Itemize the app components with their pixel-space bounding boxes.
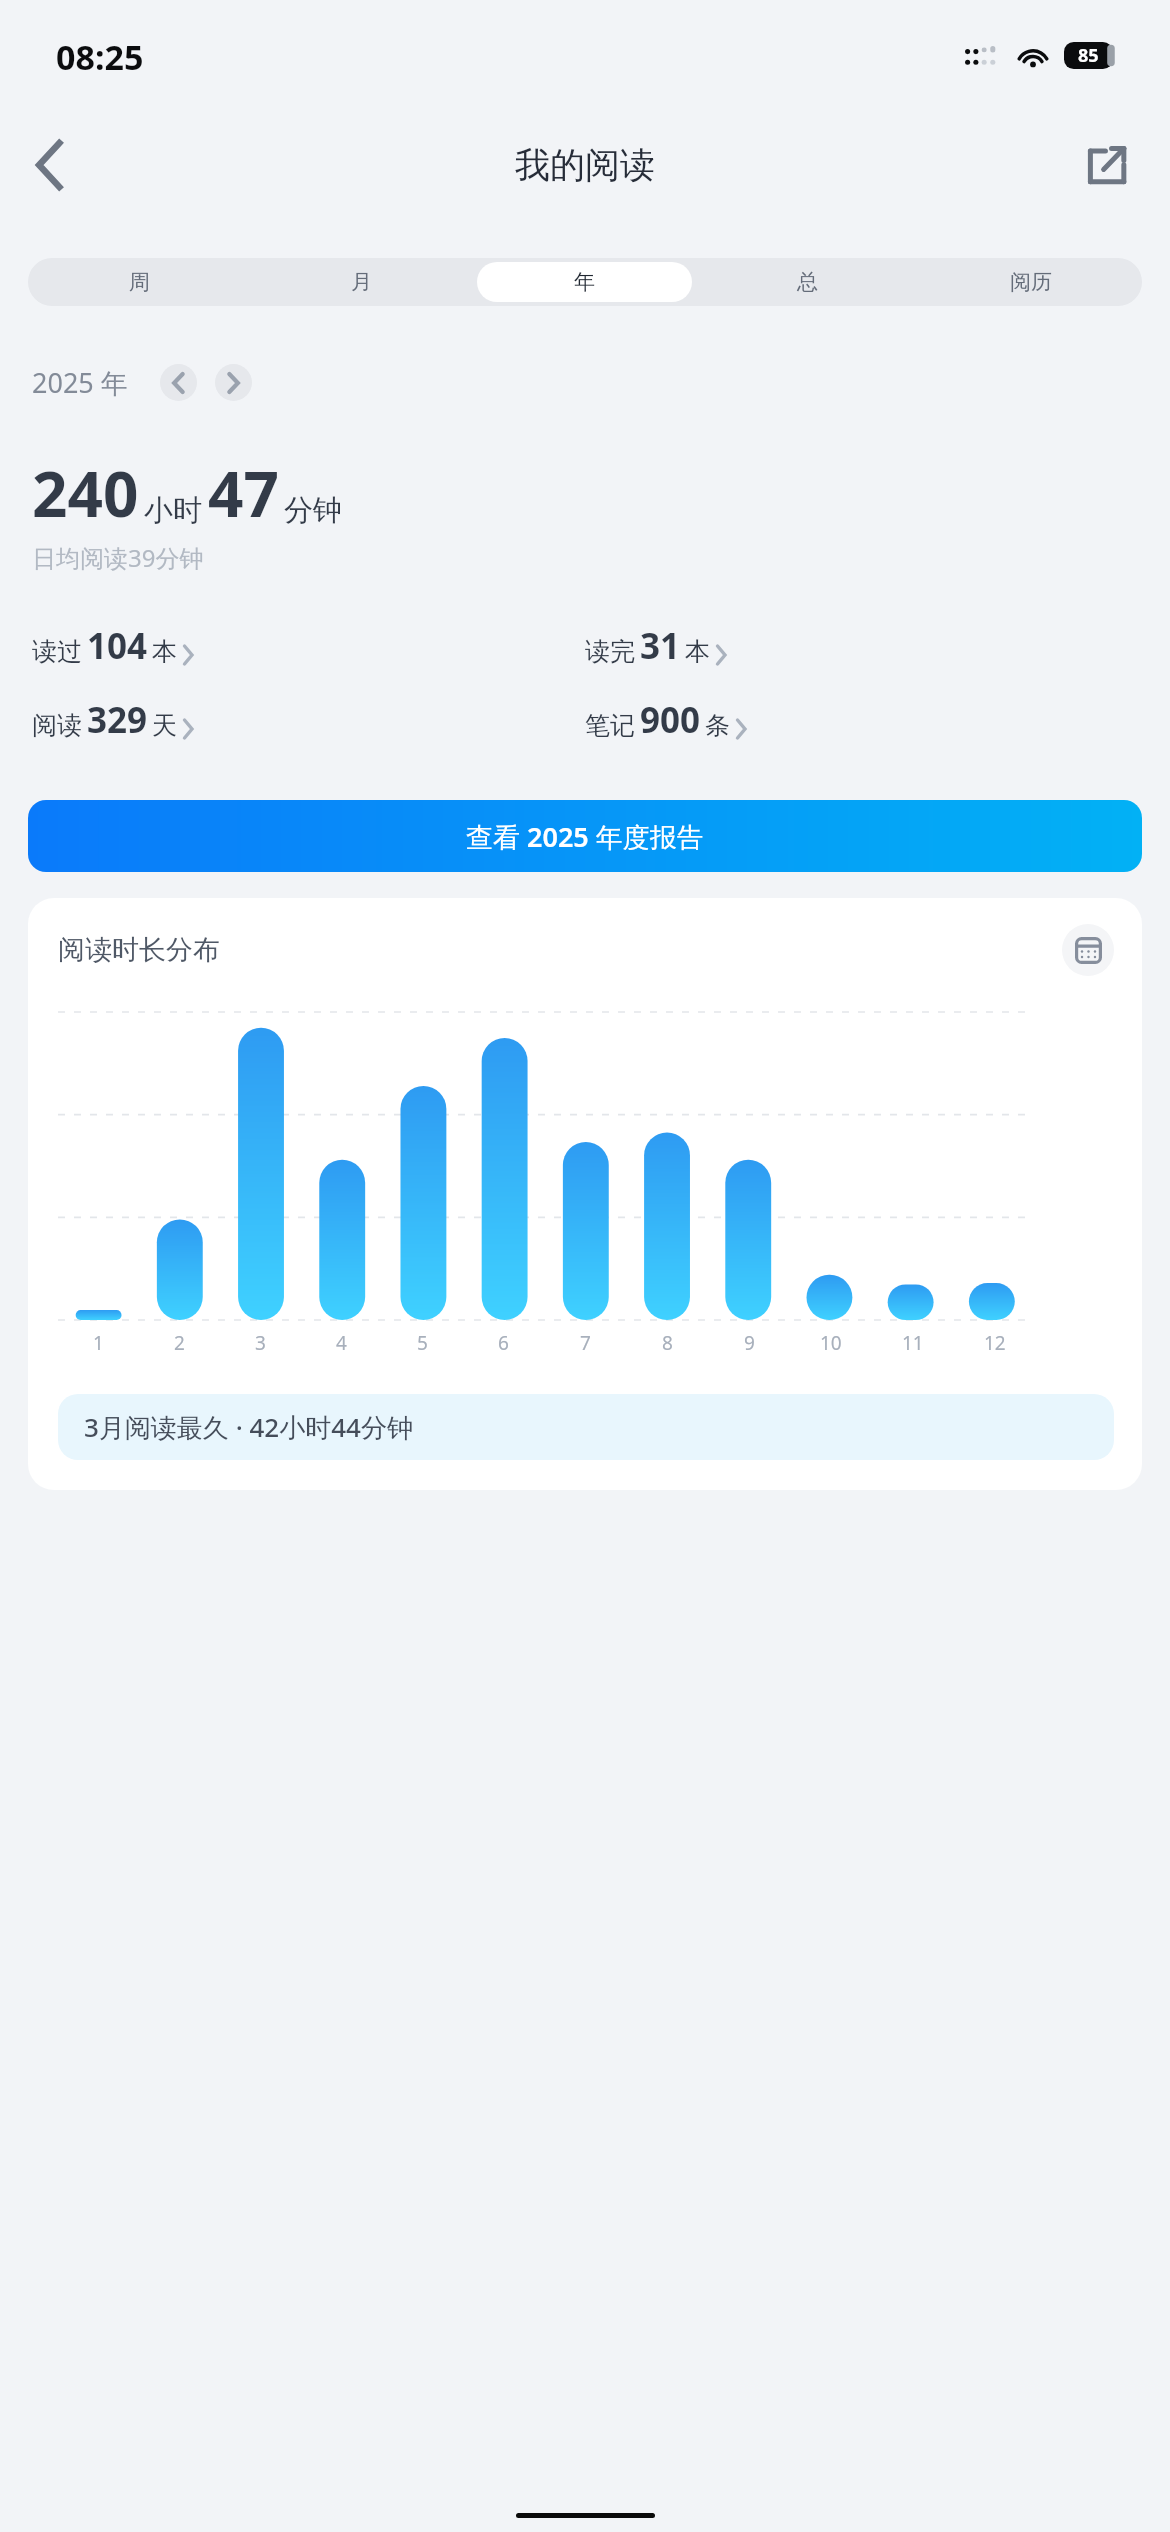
- staticText: 分钟: [284, 492, 342, 529]
- staticText: 4: [336, 1330, 347, 1356]
- staticText: 31: [640, 622, 681, 670]
- staticText: 读完: [585, 636, 635, 667]
- button[interactable]: 笔记: [585, 696, 1138, 744]
- button[interactable]: 读完: [585, 622, 1138, 670]
- staticText: 3: [255, 1330, 266, 1356]
- staticText: 阅读: [32, 710, 82, 741]
- staticText: 2: [174, 1330, 185, 1356]
- staticText: 240: [32, 451, 139, 535]
- staticText: 11: [902, 1330, 924, 1356]
- staticText: 天: [152, 710, 177, 741]
- button[interactable]: 周: [32, 262, 246, 302]
- staticText: 5: [417, 1330, 428, 1356]
- staticText: 12: [984, 1330, 1006, 1356]
- staticText: 本: [685, 636, 710, 667]
- staticText: 3月阅读最久 · 42小时44分钟: [84, 1409, 413, 1445]
- staticText: 小时: [144, 492, 202, 529]
- staticText: 900: [640, 696, 701, 744]
- staticText: 月: [351, 269, 372, 295]
- staticText: 周: [129, 269, 150, 295]
- staticText: 读过: [32, 636, 82, 667]
- button[interactable]: Previous year: [160, 364, 197, 401]
- staticText: 日均阅读39分钟: [32, 541, 204, 574]
- staticText: 条: [705, 710, 730, 741]
- staticText: 阅读时长分布: [58, 933, 220, 967]
- button[interactable]: Calendar: [1062, 924, 1114, 976]
- staticText: 查看 2025 年度报告: [466, 818, 704, 855]
- staticText: 年: [574, 269, 595, 295]
- staticText: 47: [208, 451, 279, 535]
- staticText: 08:25: [56, 34, 144, 80]
- button[interactable]: Next year: [215, 364, 252, 401]
- button[interactable]: 总: [700, 262, 915, 302]
- staticText: 8: [662, 1330, 673, 1356]
- button[interactable]: Back: [14, 129, 86, 201]
- staticText: 85: [1078, 43, 1099, 68]
- button[interactable]: 查看 2025 年度报告: [28, 800, 1142, 872]
- staticText: 阅历: [1010, 269, 1052, 295]
- staticText: 7: [580, 1330, 591, 1356]
- staticText: 9: [744, 1330, 755, 1356]
- button[interactable]: 年: [477, 262, 692, 302]
- staticText: 104: [87, 622, 148, 670]
- staticText: 6: [498, 1330, 509, 1356]
- button[interactable]: 阅历: [923, 262, 1138, 302]
- staticText: 10: [820, 1330, 842, 1356]
- button[interactable]: 读过: [32, 622, 585, 670]
- staticText: 笔记: [585, 710, 635, 741]
- staticText: 2025 年: [32, 364, 128, 401]
- staticText: 329: [87, 696, 148, 744]
- staticText: 总: [797, 269, 818, 295]
- staticText: 1: [93, 1330, 104, 1356]
- staticText: 我的阅读: [515, 143, 655, 187]
- button[interactable]: 阅读: [32, 696, 585, 744]
- button[interactable]: 3月阅读最久 · 42小时44分钟: [58, 1394, 1114, 1460]
- button[interactable]: Share: [1072, 129, 1144, 201]
- staticText: 本: [152, 636, 177, 667]
- button[interactable]: 月: [254, 262, 469, 302]
